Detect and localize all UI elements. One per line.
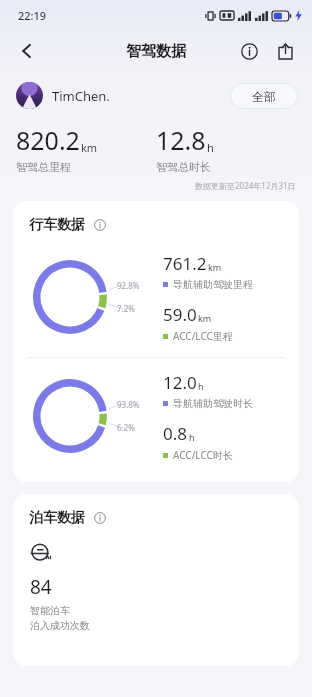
staticText: 导航辅助驾驶时长 bbox=[173, 397, 253, 410]
staticText: 智驾总时长 bbox=[156, 160, 211, 174]
staticText: 6.2% bbox=[117, 422, 135, 433]
staticText: km bbox=[208, 261, 222, 273]
staticText: ACC/LCC里程 bbox=[173, 329, 233, 343]
button[interactable]: Avatar bbox=[16, 82, 43, 109]
staticText: 59.0 bbox=[163, 303, 197, 326]
staticText: 行车数据 bbox=[29, 216, 85, 234]
staticText: 92.8% bbox=[117, 280, 140, 291]
staticText: 761.2 bbox=[163, 252, 207, 275]
staticText: km bbox=[198, 312, 212, 324]
staticText: ACC/LCC时长 bbox=[173, 448, 233, 462]
staticText: 12.0 bbox=[163, 371, 197, 394]
staticText: 84 bbox=[30, 574, 52, 600]
staticText: 0.8 bbox=[163, 422, 188, 445]
staticText: km bbox=[81, 140, 98, 155]
staticText: 智能泊车 bbox=[30, 604, 70, 617]
button[interactable]: Info bbox=[232, 34, 266, 68]
button[interactable]: Share bbox=[268, 34, 302, 68]
button[interactable]: Info bbox=[90, 215, 110, 235]
staticText: 数据更新至2024年12月31日 bbox=[195, 180, 296, 191]
staticText: 12.8 bbox=[156, 123, 206, 157]
staticText: 820.2 bbox=[16, 123, 80, 157]
staticText: 93.8% bbox=[117, 399, 140, 410]
staticText: h bbox=[207, 140, 214, 155]
staticText: 智驾数据 bbox=[126, 42, 186, 61]
staticText: 导航辅助驾驶里程 bbox=[173, 278, 253, 291]
staticText: 22:19 bbox=[18, 8, 47, 23]
button[interactable]: Back bbox=[8, 32, 46, 70]
staticText: TimChen. bbox=[52, 87, 110, 105]
staticText: 7.2% bbox=[117, 303, 135, 314]
staticText: 智驾总里程 bbox=[16, 160, 71, 174]
button[interactable]: 全部 bbox=[230, 83, 298, 109]
staticText: h bbox=[189, 431, 195, 443]
staticText: 泊入成功次数 bbox=[30, 619, 90, 632]
button[interactable]: Info bbox=[90, 508, 110, 528]
staticText: 泊车数据 bbox=[29, 509, 85, 527]
staticText: 全部 bbox=[252, 89, 276, 104]
staticText: h bbox=[198, 380, 204, 392]
